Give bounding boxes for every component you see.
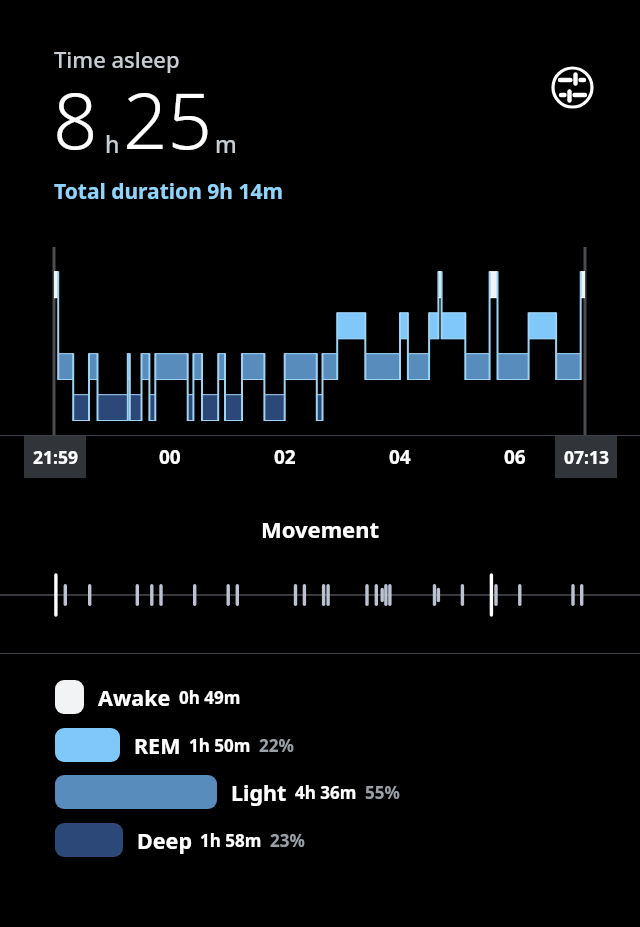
staticText: Light — [231, 778, 287, 807]
button[interactable]: Sleep settings — [548, 63, 597, 112]
staticText: 02 — [274, 444, 296, 470]
staticText: Movement — [0, 514, 640, 544]
staticText: 25 — [123, 66, 213, 172]
staticText: 00 — [159, 444, 181, 470]
staticText: Awake — [98, 683, 171, 712]
staticText: 04 — [389, 444, 411, 470]
staticText: 22% — [259, 734, 294, 757]
button[interactable]: Light — [55, 775, 620, 809]
staticText: 8 — [53, 66, 98, 172]
staticText: Deep — [137, 826, 192, 855]
button[interactable]: Deep — [55, 823, 620, 857]
staticText: m — [215, 128, 237, 159]
staticText: 1h 58m — [200, 829, 262, 852]
staticText: 0h 49m — [179, 686, 241, 709]
button[interactable]: Awake — [55, 680, 620, 714]
staticText: 07:13 — [564, 445, 609, 469]
staticText: 1h 50m — [189, 734, 251, 757]
staticText: 21:59 — [33, 445, 78, 469]
button[interactable]: REM — [55, 728, 620, 762]
staticText: REM — [134, 731, 181, 760]
staticText: h — [105, 128, 120, 159]
staticText: 4h 36m — [295, 781, 357, 804]
staticText: Total duration 9h 14m — [54, 177, 283, 206]
staticText: 55% — [365, 781, 400, 804]
staticText: 06 — [504, 444, 526, 470]
staticText: Time asleep — [54, 44, 180, 74]
staticText: 23% — [270, 829, 305, 852]
